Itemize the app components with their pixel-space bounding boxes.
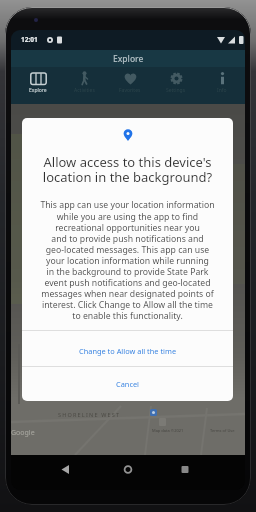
button[interactable]: Cancel — [22, 367, 233, 401]
button[interactable] — [174, 459, 196, 481]
staticText: Settings — [166, 87, 186, 94]
button[interactable]: Explore — [15, 67, 61, 104]
staticText: Terms of Use — [210, 428, 235, 433]
button[interactable]: Favorites — [107, 67, 153, 104]
button[interactable]: Settings — [153, 67, 199, 104]
button[interactable] — [117, 459, 139, 481]
staticText: Explore — [29, 87, 47, 94]
staticText: Google — [11, 428, 35, 438]
button[interactable]: Info — [199, 67, 245, 104]
staticText: Activities — [74, 87, 95, 94]
button[interactable]: Change to Allow all the time — [22, 331, 233, 366]
staticText: SHORELINE WEST — [58, 411, 121, 418]
staticText: Allow access to this device's location i… — [22, 153, 233, 186]
staticText: Favorites — [119, 87, 141, 94]
staticText: This app can use your location informati… — [22, 199, 233, 321]
button[interactable]: Activities — [61, 67, 107, 104]
staticText: Map data ©2021 — [152, 428, 184, 433]
staticText: Change to Allow all the time — [79, 346, 177, 356]
button[interactable] — [59, 459, 81, 481]
staticText: Info — [217, 87, 227, 94]
staticText: Explore — [113, 53, 144, 65]
staticText: 12:01 — [21, 35, 38, 44]
staticText: Cancel — [116, 379, 140, 389]
